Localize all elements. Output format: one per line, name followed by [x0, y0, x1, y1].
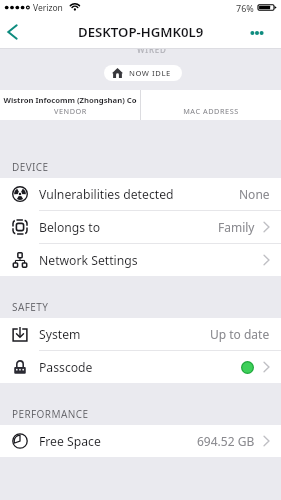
staticText: SAFETY	[12, 300, 49, 314]
button[interactable]: System	[0, 318, 281, 350]
staticText: Vulnerabilities detected	[39, 186, 174, 203]
button[interactable]: Back	[0, 15, 24, 48]
staticText: System	[39, 326, 81, 343]
button[interactable]: Belongs to	[0, 211, 281, 243]
staticText: PERFORMANCE	[12, 407, 89, 421]
button[interactable]: Passcode	[0, 351, 281, 383]
staticText: 76%	[236, 2, 254, 14]
staticText: WIRED	[137, 44, 167, 55]
staticText: Verizon	[33, 2, 63, 14]
staticText: Free Space	[39, 433, 101, 450]
staticText: DEVICE	[12, 160, 49, 174]
button[interactable]: Network Settings	[0, 244, 281, 276]
staticText: DESKTOP-HGMK0L9	[78, 23, 204, 41]
button[interactable]: More options	[244, 15, 270, 48]
button[interactable]: NOW IDLE	[104, 65, 182, 81]
staticText: Passcode	[39, 359, 93, 376]
staticText: NOW IDLE	[129, 68, 171, 78]
staticText: MAC ADDRESS	[183, 106, 239, 116]
button[interactable]: Vulnerabilities detected	[0, 178, 281, 210]
staticText: Wistron Infocomm (Zhongshan) Co	[3, 95, 137, 105]
staticText: Up to date	[210, 326, 270, 342]
staticText: Network Settings	[39, 252, 138, 269]
staticText: Belongs to	[39, 219, 101, 236]
staticText: Family	[218, 219, 255, 235]
staticText: 694.52 GB	[197, 433, 255, 449]
staticText: None	[239, 186, 270, 202]
button[interactable]: Free Space	[0, 425, 281, 457]
staticText: VENDOR	[54, 106, 87, 116]
